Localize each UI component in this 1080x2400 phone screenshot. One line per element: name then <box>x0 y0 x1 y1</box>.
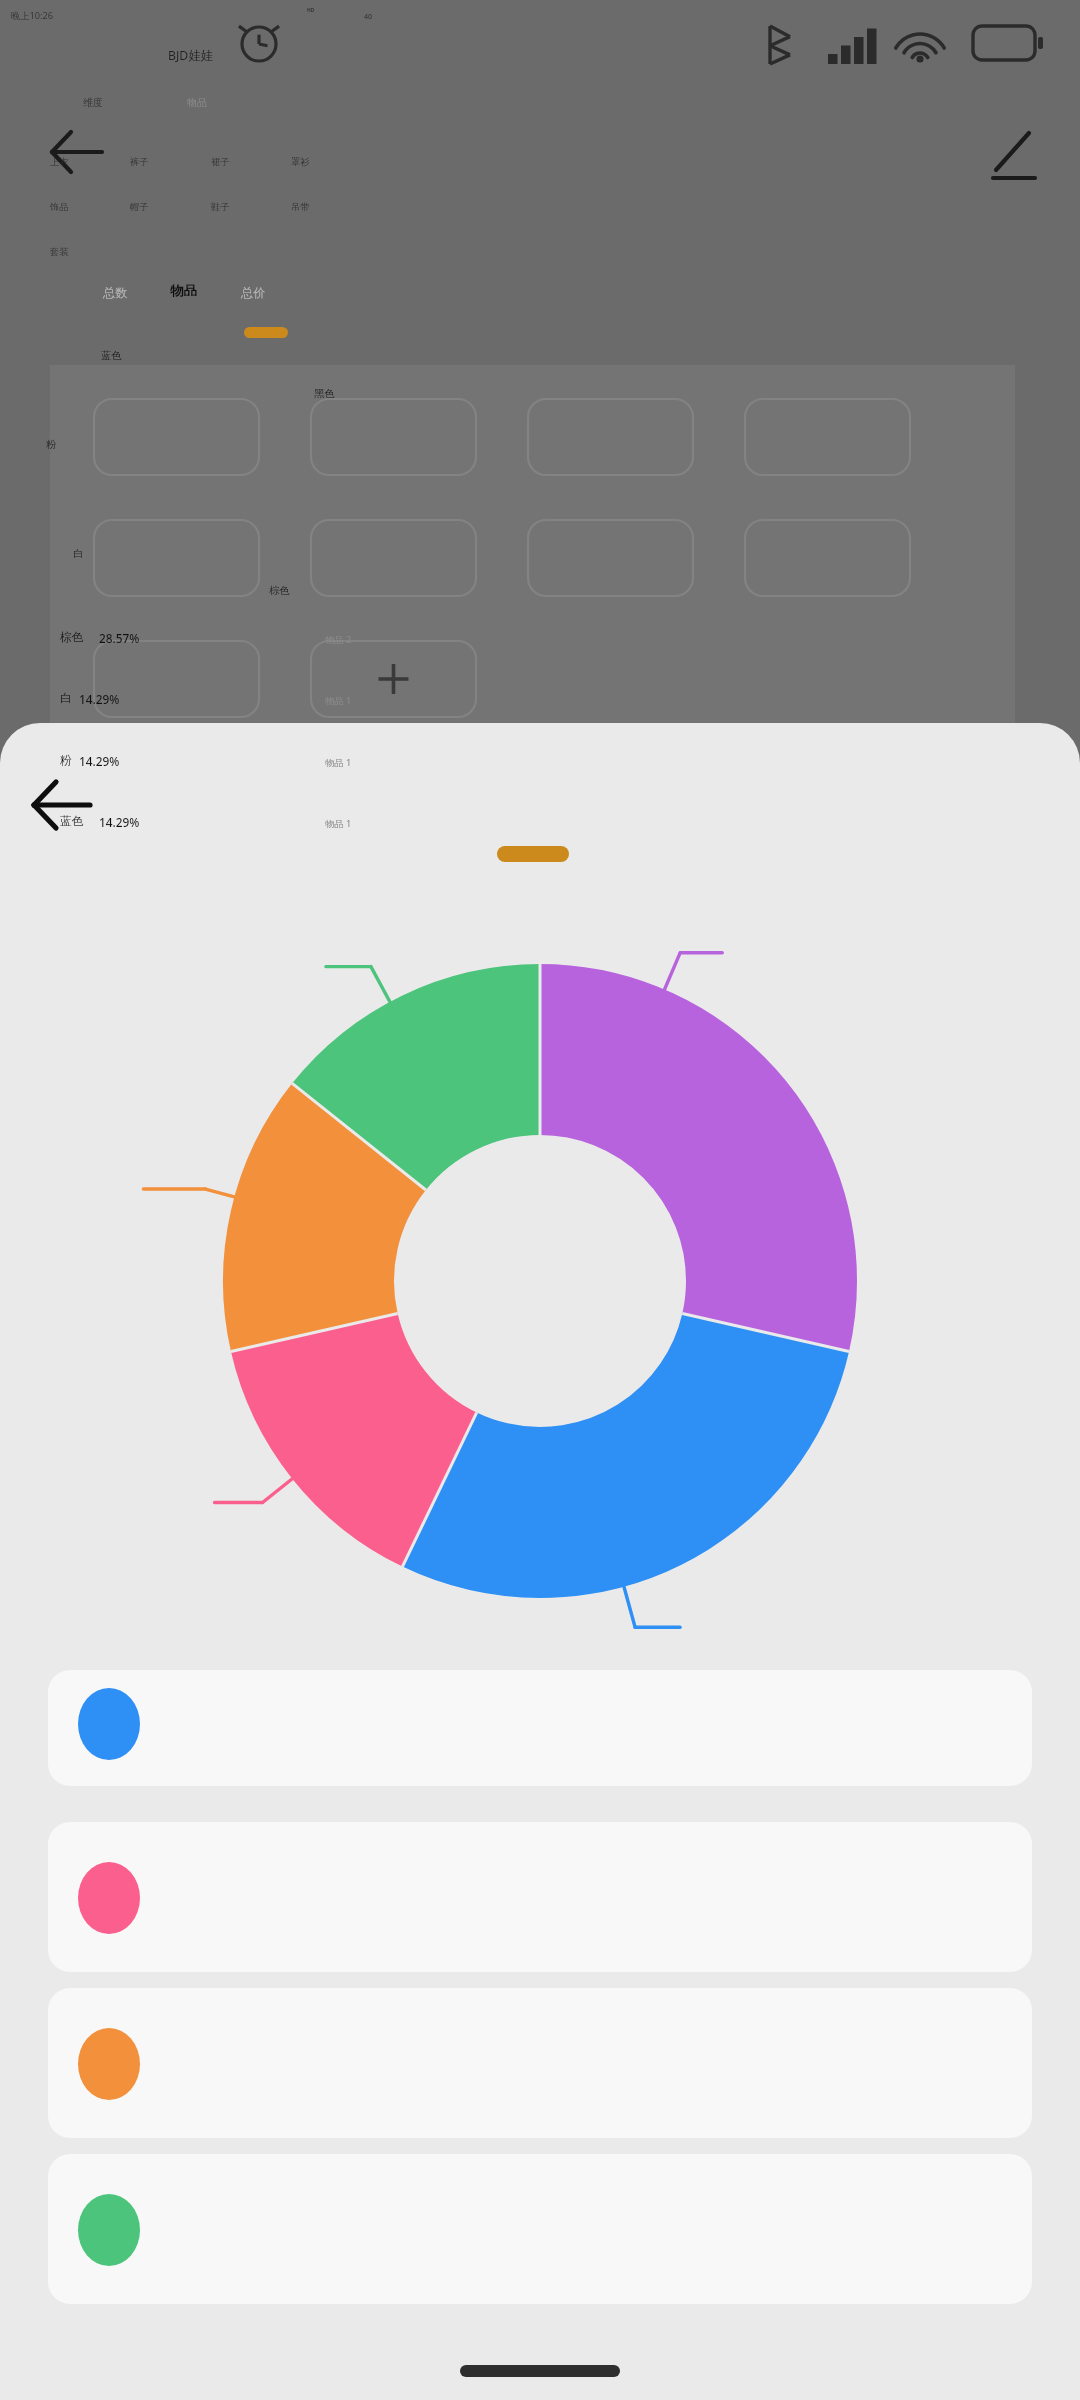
staticText: 晚上10:26 <box>11 9 54 22</box>
button[interactable]: 裤子 <box>130 156 149 168</box>
button[interactable]: 总数 <box>103 285 128 300</box>
button[interactable]: 物品 <box>187 96 207 109</box>
button[interactable]: 维度 <box>83 96 103 109</box>
button[interactable]: 套装 <box>50 246 69 258</box>
staticText: 蓝色 <box>60 814 84 829</box>
staticText: 14.29% <box>79 691 120 707</box>
button[interactable]: 帽子 <box>130 201 149 213</box>
staticText: 物品 1 <box>325 817 352 830</box>
staticText: 蓝色 <box>101 349 122 362</box>
button[interactable]: 罩衫 <box>291 156 310 168</box>
other: 棕色 28.57% 物品 2 <box>0 0 1080 2400</box>
staticText: 黑色 <box>314 387 335 400</box>
button[interactable]: 物品 <box>170 282 197 299</box>
button[interactable]: 总价 <box>241 285 266 300</box>
button[interactable]: 吊带 <box>291 201 310 213</box>
staticText: 14.29% <box>99 814 140 830</box>
button[interactable]: 上衣 <box>50 156 69 168</box>
staticText: 棕色 <box>60 630 84 645</box>
staticText: 白 <box>60 691 72 706</box>
staticText: 粉 <box>46 438 57 451</box>
other: 白 14.29% 物品 1 <box>0 0 1080 2400</box>
other: 粉 14.29% 物品 1 <box>0 0 1080 2400</box>
button[interactable]: 鞋子 <box>211 201 230 213</box>
staticText: 粉 <box>60 753 72 768</box>
staticText: 40 <box>364 11 373 21</box>
staticText: 白 <box>73 547 84 560</box>
button[interactable]: 饰品 <box>50 201 69 213</box>
staticText: 棕色 <box>269 584 290 597</box>
staticText: 14.29% <box>79 753 120 769</box>
staticText: 物品 1 <box>325 756 352 769</box>
staticText: 28.57% <box>99 630 140 646</box>
staticText: 物品 1 <box>325 694 352 707</box>
staticText: 物品 2 <box>325 633 352 646</box>
button[interactable]: 裙子 <box>211 156 230 168</box>
staticText: HD <box>307 7 315 14</box>
other: 蓝色 14.29% 物品 1 <box>0 0 1080 2400</box>
staticText: BJD娃娃 <box>168 47 213 64</box>
